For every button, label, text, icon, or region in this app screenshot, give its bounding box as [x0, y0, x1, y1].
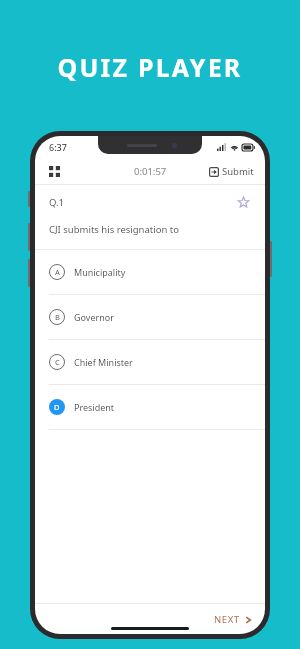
- button[interactable]: C: [35, 340, 265, 384]
- button[interactable]: A: [35, 250, 265, 294]
- staticText: Submit: [222, 165, 254, 178]
- staticText: CJI submits his resignation to: [49, 223, 179, 236]
- button[interactable]: B: [35, 295, 265, 339]
- staticText: B: [55, 312, 60, 322]
- staticText: NEXT: [214, 613, 240, 626]
- button[interactable]: D: [35, 385, 265, 429]
- staticText: Governor: [74, 311, 114, 323]
- staticText: A: [55, 267, 60, 277]
- staticText: 6:37: [49, 141, 67, 153]
- staticText: Municipality: [74, 266, 126, 278]
- staticText: QUIZ PLAYER: [0, 50, 300, 84]
- staticText: 0:01:57: [134, 165, 167, 178]
- button[interactable]: Question grid: [45, 162, 64, 181]
- button[interactable]: NEXT: [211, 610, 255, 629]
- staticText: D: [54, 402, 60, 412]
- staticText: Q.1: [49, 196, 65, 209]
- staticText: President: [74, 401, 115, 413]
- button[interactable]: Submit: [206, 162, 257, 181]
- button[interactable]: Bookmark question: [236, 195, 251, 210]
- staticText: Chief Minister: [74, 356, 133, 368]
- staticText: C: [55, 357, 60, 367]
